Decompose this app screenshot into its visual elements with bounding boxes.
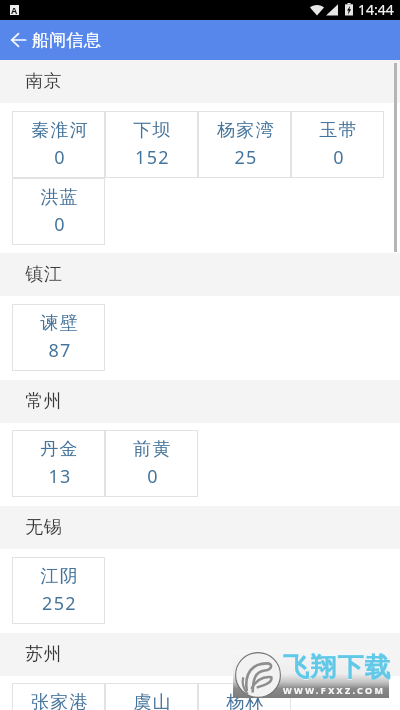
staticText: 14:44: [358, 0, 394, 19]
button[interactable]: 虞山: [105, 683, 198, 710]
button[interactable]: 下坝: [105, 111, 198, 178]
staticText: 前黄: [133, 438, 172, 461]
button[interactable]: 谏壁: [12, 304, 105, 371]
staticText: 13: [48, 464, 72, 489]
button[interactable]: 前黄: [105, 430, 198, 497]
staticText: 0: [147, 464, 159, 489]
staticText: 秦淮河: [31, 119, 89, 142]
button[interactable]: 玉带: [291, 111, 384, 178]
button[interactable]: 杨林: [198, 683, 291, 710]
staticText: 洪蓝: [40, 186, 79, 209]
staticText: 船闸信息: [32, 30, 102, 51]
button[interactable]: 杨家湾: [198, 111, 291, 178]
button[interactable]: 洪蓝: [12, 178, 105, 245]
staticText: 飞翔下载: [282, 650, 392, 684]
button[interactable]: 秦淮河: [12, 111, 105, 178]
staticText: 25: [234, 145, 258, 170]
button[interactable]: 张家港: [12, 683, 105, 710]
staticText: 江阴: [40, 565, 79, 588]
staticText: 152: [135, 145, 170, 170]
button[interactable]: Back: [0, 20, 36, 60]
staticText: 0: [54, 145, 66, 170]
staticText: 飞翔下载: [283, 651, 392, 684]
staticText: 玉带: [319, 119, 358, 142]
staticText: WWW.FXXZ.COM: [283, 684, 386, 696]
staticText: 镇江: [25, 263, 62, 286]
staticText: 苏州: [25, 643, 62, 666]
staticText: 张家港: [31, 691, 89, 710]
staticText: 0: [333, 145, 345, 170]
staticText: A: [11, 4, 18, 14]
button[interactable]: 江阴: [12, 557, 105, 624]
staticText: 87: [48, 338, 72, 363]
staticText: 无锡: [25, 516, 62, 539]
button[interactable]: 丹金: [12, 430, 105, 497]
staticText: 南京: [25, 70, 62, 93]
staticText: 杨林: [226, 691, 265, 710]
staticText: 0: [54, 212, 66, 237]
staticText: 谏壁: [40, 312, 79, 335]
staticText: 下坝: [133, 119, 172, 142]
staticText: 252: [42, 591, 77, 616]
staticText: 丹金: [40, 438, 79, 461]
staticText: 杨家湾: [217, 119, 275, 142]
staticText: 虞山: [133, 691, 172, 710]
staticText: 常州: [25, 390, 62, 413]
